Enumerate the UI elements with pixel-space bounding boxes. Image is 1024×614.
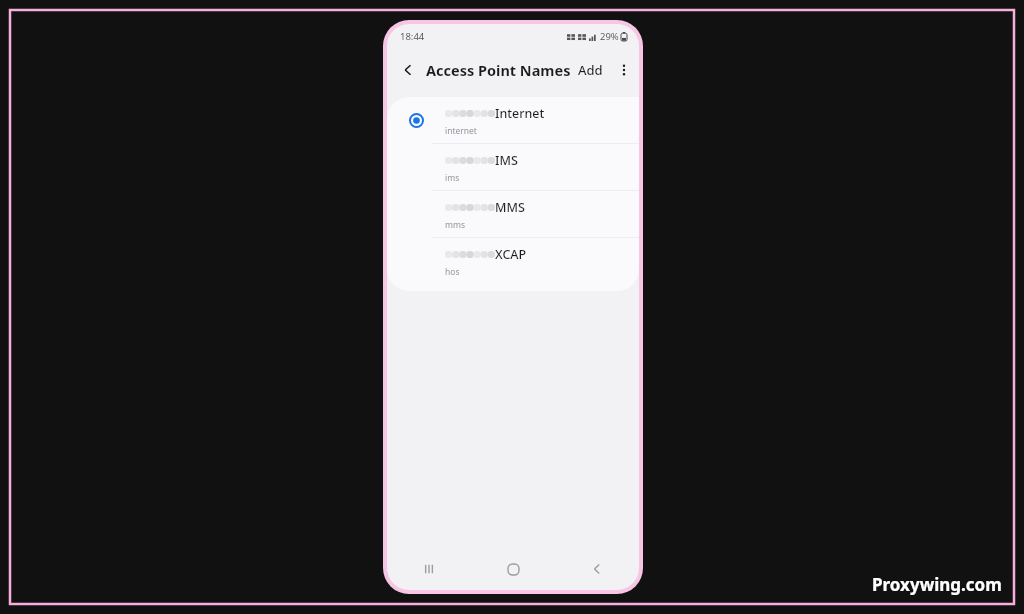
button[interactable]: Back (555, 548, 639, 590)
button[interactable]: MMS (387, 191, 639, 238)
staticText: Proxywing.com (872, 573, 1002, 596)
staticText: IMS (495, 152, 518, 169)
button[interactable]: XCAP (387, 238, 639, 285)
button[interactable]: Back (392, 54, 424, 86)
staticText: 29% (600, 30, 619, 43)
staticText: hos (445, 266, 460, 278)
staticText: MMS (495, 199, 525, 216)
staticText: internet (445, 125, 477, 137)
staticText: Add (578, 61, 603, 79)
button[interactable]: More options (609, 55, 639, 85)
button[interactable]: Home (471, 548, 555, 590)
button[interactable]: Recent apps (387, 548, 471, 590)
staticText: ims (445, 172, 460, 184)
staticText: 18:44 (400, 30, 425, 43)
staticText: XCAP (495, 246, 527, 263)
staticText: Access Point Names (426, 60, 571, 80)
staticText: mms (445, 219, 465, 231)
staticText: Internet (495, 105, 545, 122)
button[interactable]: IMS (387, 144, 639, 191)
button[interactable]: Add (572, 55, 609, 85)
button[interactable]: Internet (387, 97, 639, 144)
